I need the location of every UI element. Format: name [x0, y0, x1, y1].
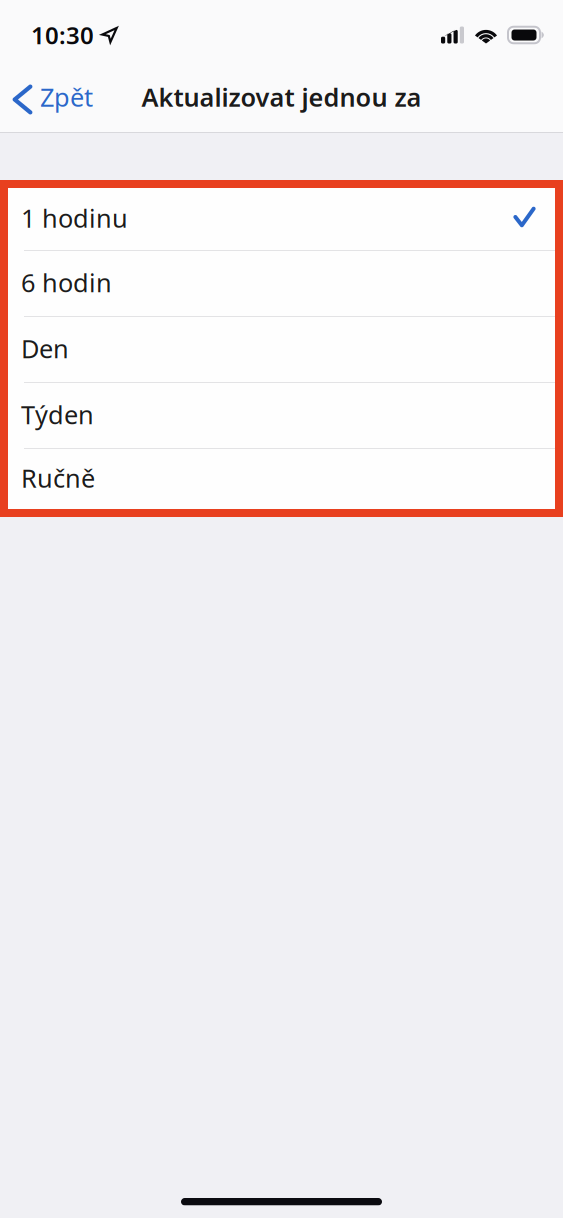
button[interactable]: Den — [8, 317, 555, 383]
button[interactable]: 6 hodin — [8, 251, 555, 317]
staticText: Den — [21, 332, 69, 365]
staticText: Zpět — [40, 80, 93, 114]
staticText: Ručně — [21, 461, 95, 495]
button[interactable]: Týden — [8, 383, 555, 449]
staticText: 10:30 — [31, 19, 94, 51]
staticText: Aktualizovat jednou za — [141, 80, 421, 114]
staticText: 1 hodinu — [21, 201, 128, 235]
staticText: Týden — [21, 398, 94, 431]
staticText: 6 hodin — [21, 266, 112, 299]
button[interactable]: Zpět — [0, 66, 104, 128]
button[interactable]: 1 hodinu — [8, 188, 555, 251]
button[interactable]: Ručně — [8, 449, 555, 509]
